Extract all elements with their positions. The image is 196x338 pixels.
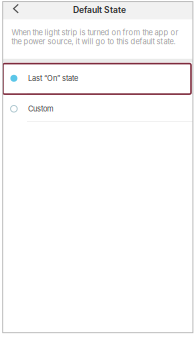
staticText: When the light strip is turned on from t… [11,28,178,46]
staticText: Custom [28,104,54,113]
staticText: Last “On” state [28,74,78,83]
button[interactable]: Last “On” state [0,63,196,94]
button[interactable]: Back [8,0,24,20]
button[interactable]: Custom [0,94,196,122]
staticText: Default State [73,5,126,15]
